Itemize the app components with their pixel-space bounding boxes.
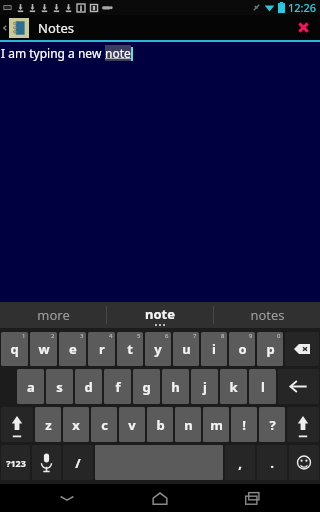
staticText: j: [203, 378, 207, 396]
staticText: Notes: [38, 19, 74, 37]
button[interactable]: Shift: [287, 407, 319, 442]
staticText: 2: [51, 332, 55, 340]
staticText: w: [38, 340, 50, 358]
button[interactable]: y: [145, 332, 171, 366]
staticText: q: [10, 340, 19, 358]
staticText: note: [145, 305, 175, 323]
staticText: u: [182, 340, 191, 358]
staticText: m: [210, 416, 223, 434]
staticText: d: [84, 378, 93, 396]
button[interactable]: Shift: [1, 407, 33, 442]
button[interactable]: r: [88, 332, 115, 366]
staticText: notes: [250, 306, 285, 324]
staticText: 1: [22, 332, 26, 340]
staticText: t: [127, 340, 133, 358]
button[interactable]: e: [59, 332, 86, 366]
button[interactable]: Close: [286, 15, 320, 40]
button[interactable]: ?123: [1, 445, 30, 480]
staticText: y: [154, 340, 162, 358]
button[interactable]: Home: [134, 484, 186, 512]
button[interactable]: n: [175, 407, 201, 442]
staticText: b: [156, 416, 165, 434]
button[interactable]: g: [133, 369, 160, 404]
button[interactable]: note: [107, 302, 213, 328]
button[interactable]: a: [17, 369, 44, 404]
staticText: 9: [249, 332, 253, 340]
button[interactable]: z: [35, 407, 61, 442]
button[interactable]: v: [119, 407, 145, 442]
staticText: note: [105, 45, 131, 61]
staticText: more: [37, 306, 70, 324]
staticText: /: [75, 454, 81, 472]
button[interactable]: ?: [259, 407, 285, 442]
staticText: s: [56, 378, 63, 396]
button[interactable]: u: [173, 332, 199, 366]
staticText: k: [229, 378, 238, 396]
staticText: n: [184, 416, 193, 434]
staticText: p: [266, 340, 275, 358]
staticText: 7: [193, 332, 197, 340]
button[interactable]: j: [191, 369, 218, 404]
button[interactable]: p: [257, 332, 283, 366]
staticText: o: [238, 340, 247, 358]
button[interactable]: /: [63, 445, 93, 480]
staticText: I am typing a new: [1, 45, 105, 61]
button[interactable]: Backspace: [285, 332, 319, 366]
button[interactable]: I am typing a new: [0, 42, 320, 302]
button[interactable]: Voice input: [32, 445, 61, 480]
staticText: !: [242, 416, 246, 434]
staticText: 5: [137, 332, 141, 340]
button[interactable]: !: [231, 407, 257, 442]
staticText: x: [72, 416, 80, 434]
button[interactable]: .: [257, 445, 287, 480]
button[interactable]: i: [201, 332, 227, 366]
button[interactable]: Recent apps: [227, 484, 279, 512]
button[interactable]: x: [63, 407, 89, 442]
staticText: e: [69, 340, 77, 358]
button[interactable]: b: [147, 407, 173, 442]
button[interactable]: f: [104, 369, 131, 404]
button[interactable]: o: [229, 332, 255, 366]
button[interactable]: t: [117, 332, 143, 366]
button[interactable]: w: [30, 332, 57, 366]
button[interactable]: Enter: [278, 369, 319, 404]
staticText: h: [171, 378, 180, 396]
button[interactable]: notes: [214, 302, 320, 328]
button[interactable]: h: [162, 369, 189, 404]
staticText: g: [142, 378, 151, 396]
button[interactable]: q: [1, 332, 28, 366]
staticText: v: [128, 416, 136, 434]
staticText: z: [45, 416, 52, 434]
staticText: 0: [277, 332, 281, 340]
staticText: 4: [109, 332, 113, 340]
button[interactable]: k: [220, 369, 247, 404]
button[interactable]: m: [203, 407, 229, 442]
staticText: r: [99, 340, 105, 358]
button[interactable]: c: [91, 407, 117, 442]
staticText: .: [270, 454, 274, 472]
button[interactable]: Hide keyboard: [41, 484, 93, 512]
staticText: 12:26: [288, 0, 317, 15]
button[interactable]: Back: [0, 15, 9, 40]
button[interactable]: d: [75, 369, 102, 404]
button[interactable]: more: [0, 302, 106, 328]
staticText: 6: [165, 332, 169, 340]
staticText: l: [261, 378, 265, 396]
staticText: 3: [80, 332, 84, 340]
staticText: ?: [269, 416, 276, 434]
button[interactable]: s: [46, 369, 73, 404]
staticText: a: [27, 378, 35, 396]
staticText: i: [212, 340, 216, 358]
staticText: ,: [238, 454, 242, 472]
staticText: c: [101, 416, 108, 434]
button[interactable]: ,: [225, 445, 255, 480]
staticText: ?123: [6, 457, 26, 469]
button[interactable]: Emoji: [289, 445, 319, 480]
staticText: 8: [221, 332, 225, 340]
button[interactable]: l: [249, 369, 276, 404]
staticText: f: [115, 378, 121, 396]
